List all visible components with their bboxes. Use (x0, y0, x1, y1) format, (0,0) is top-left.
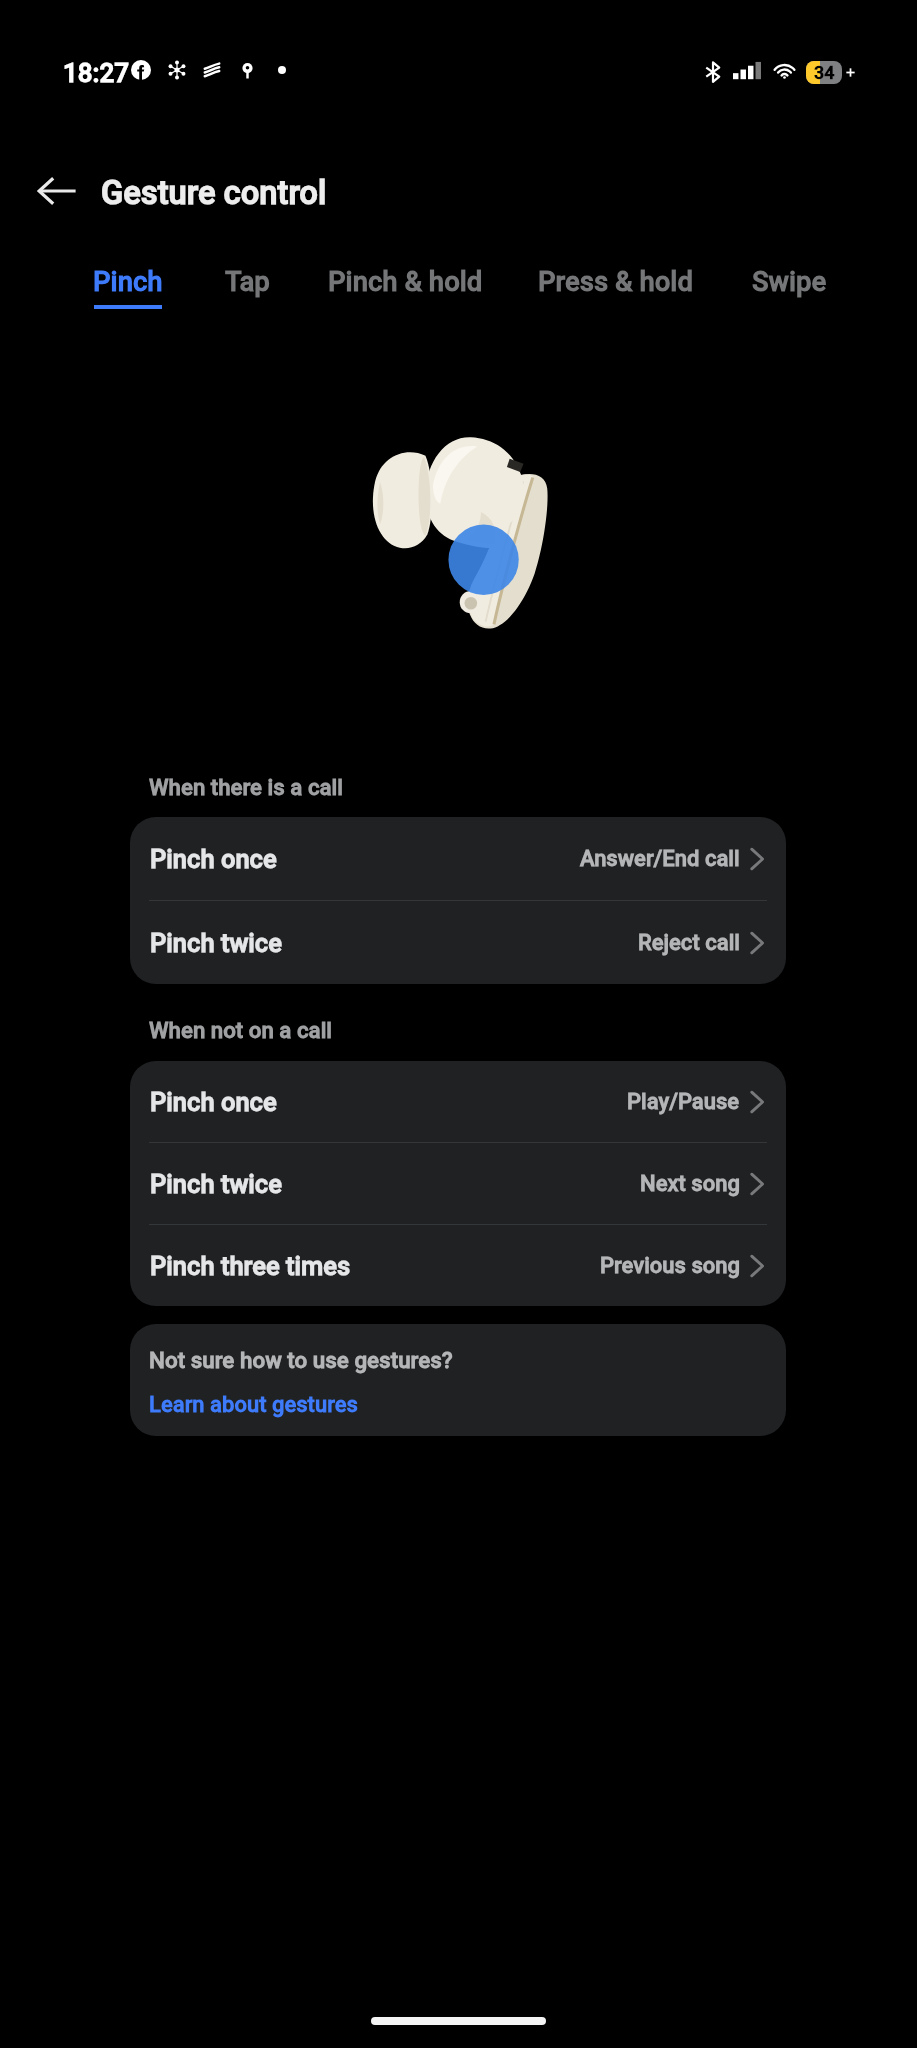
staticText: Next song (640, 1171, 740, 1197)
staticText: When not on a call (149, 1017, 333, 1043)
button[interactable]: Learn about gestures (149, 1392, 358, 1418)
staticText: Pinch twice (150, 1169, 282, 1199)
staticText: Pinch once (150, 1087, 277, 1117)
staticText: Pinch (93, 265, 163, 297)
button[interactable]: Pinch once (130, 1061, 786, 1142)
staticText: 34 (814, 62, 835, 83)
button[interactable]: Swipe (722, 243, 856, 321)
button[interactable]: Pinch three times (130, 1225, 786, 1306)
staticText: Pinch once (150, 844, 277, 874)
staticText: Answer/End call (580, 846, 740, 872)
staticText: Learn about gestures (149, 1392, 358, 1418)
staticText: Previous song (600, 1253, 740, 1279)
staticText: 18:27 (63, 58, 130, 88)
button[interactable]: Tap (195, 243, 300, 321)
staticText: Gesture control (101, 174, 327, 212)
staticText: When there is a call (149, 774, 344, 800)
staticText: Press & hold (538, 265, 693, 297)
button[interactable]: Pinch (62, 243, 194, 321)
staticText: Pinch & hold (328, 265, 483, 297)
button[interactable]: Pinch & hold (300, 243, 510, 321)
button[interactable]: Pinch twice (130, 1143, 786, 1224)
button[interactable]: Pinch twice (130, 901, 786, 984)
staticText: Pinch three times (150, 1251, 351, 1281)
staticText: Not sure how to use gestures? (149, 1347, 453, 1373)
staticText: Reject call (638, 930, 740, 956)
button[interactable]: Back (24, 158, 90, 224)
staticText: Play/Pause (627, 1089, 740, 1115)
staticText: Swipe (752, 265, 827, 297)
button[interactable]: Pinch once (130, 817, 786, 900)
staticText: Pinch twice (150, 928, 282, 958)
button[interactable]: Press & hold (509, 243, 721, 321)
staticText: Tap (225, 265, 270, 297)
